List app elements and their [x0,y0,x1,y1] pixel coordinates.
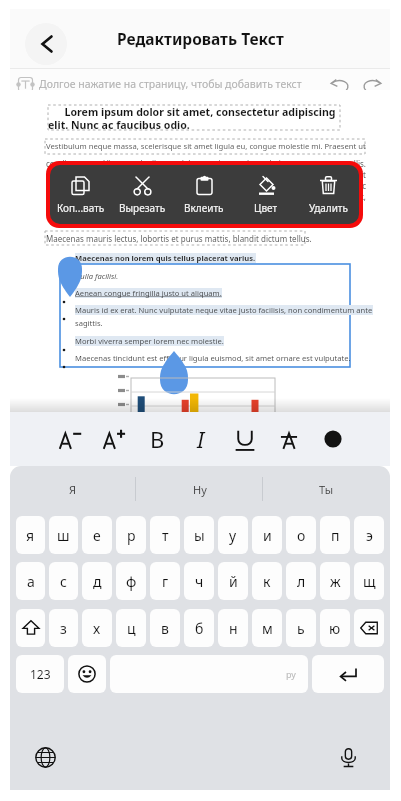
button[interactable]: ш [49,516,78,554]
button[interactable]: л [286,562,316,600]
staticText: ц [127,619,136,638]
button[interactable]: B [140,422,174,456]
button[interactable]: Вырезать [111,165,173,224]
button[interactable]: Shift [16,609,45,647]
button[interactable]: Underline [228,422,262,456]
staticText: х [93,619,101,638]
button[interactable]: Text colour [316,422,350,456]
button[interactable]: т [150,516,180,554]
staticText: п [331,526,340,545]
staticText: Maecenas tincidunt est efficitur ligula … [75,353,351,363]
button[interactable]: п [320,516,350,554]
button[interactable]: Коп...вать [50,165,111,224]
staticText: Я [69,482,77,497]
staticText: й [229,572,238,591]
button[interactable]: ю [320,609,350,647]
staticText: б [195,619,204,638]
button[interactable]: Enter [312,655,384,693]
button[interactable]: ь [286,609,316,647]
staticText: Vestibulum neque massa, scelerisque sit … [46,141,376,151]
staticText: B [150,424,165,454]
button[interactable]: Voice input [333,742,363,772]
button[interactable]: Backspace [354,609,384,647]
staticText: Aenean congue fringilla justo ut aliquam… [75,288,222,298]
staticText: Ты [319,482,334,497]
button[interactable]: н [218,609,248,647]
staticText: ру [286,668,296,680]
button[interactable]: Emoji [68,655,106,693]
staticText: condimentum. Vivamus dapibus sodales ex,… [46,158,366,213]
button[interactable]: I [184,422,218,456]
staticText: и [263,526,272,545]
staticText: д [93,572,102,591]
button[interactable]: Вклеить [173,165,235,224]
staticText: 123 [30,666,51,682]
staticText: с [60,572,67,591]
staticText: ф [126,572,137,591]
staticText: ы [194,526,205,545]
staticText: ж [330,572,341,591]
staticText: ч [195,572,204,591]
button[interactable]: к [252,562,282,600]
button[interactable]: д [82,562,112,600]
staticText: Ну [193,482,207,497]
button[interactable]: Back [25,23,67,65]
staticText: Maecenas non lorem quis tellus placerat … [75,253,256,263]
button[interactable]: г [150,562,180,600]
staticText: у [229,526,237,545]
button[interactable]: э [354,516,384,554]
button[interactable]: щ [354,562,384,600]
staticText: в [161,619,169,638]
button[interactable]: Я [10,466,136,512]
staticText: Lorem ipsum dolor sit amet, consectetur … [48,105,340,132]
button[interactable]: я [16,516,45,554]
button[interactable]: и [252,516,282,554]
button[interactable]: Decrease font size [52,422,86,456]
staticText: Maecenas mauris lectus, lobortis et puru… [46,233,312,244]
staticText: г [162,572,169,591]
button[interactable]: о [286,516,316,554]
button[interactable]: б [184,609,214,647]
button[interactable]: 123 [16,655,64,693]
staticText: I [197,424,205,454]
button[interactable]: ц [116,609,146,647]
staticText: ь [297,619,305,638]
button[interactable]: Ну [136,466,263,512]
button[interactable]: Strikethrough [272,422,306,456]
staticText: р [127,526,136,545]
staticText: Morbi viverra semper lorem nec molestie. [75,336,224,346]
staticText: Коп...вать [57,201,105,215]
button[interactable]: Удалить [297,165,359,224]
staticText: е [93,526,101,545]
button[interactable]: Change language [30,742,60,772]
staticText: Nulla facilisi. [75,271,119,281]
staticText: ш [57,526,70,545]
staticText: Mauris id ex erat. Nunc vulputate neque … [75,305,373,315]
button[interactable]: Ты [263,466,390,512]
staticText: щ [363,572,376,591]
button[interactable]: м [252,609,282,647]
staticText: я [26,526,35,545]
staticText: Вклеить [184,201,224,215]
button[interactable]: ф [116,562,146,600]
staticText: sagittis. [75,318,103,328]
staticText: ю [329,619,341,638]
button[interactable]: с [49,562,78,600]
staticText: Вырезать [119,201,166,215]
button[interactable]: Space [110,655,308,693]
button[interactable]: в [150,609,180,647]
button[interactable]: е [82,516,112,554]
button[interactable]: з [49,609,78,647]
staticText: а [27,572,35,591]
button[interactable]: р [116,516,146,554]
button[interactable]: х [82,609,112,647]
button[interactable]: у [218,516,248,554]
staticText: з [60,619,67,638]
button[interactable]: а [16,562,45,600]
button[interactable]: ы [184,516,214,554]
button[interactable]: Цвет [235,165,297,224]
button[interactable]: ч [184,562,214,600]
button[interactable]: ж [320,562,350,600]
button[interactable]: й [218,562,248,600]
button[interactable]: Increase font size [96,422,130,456]
